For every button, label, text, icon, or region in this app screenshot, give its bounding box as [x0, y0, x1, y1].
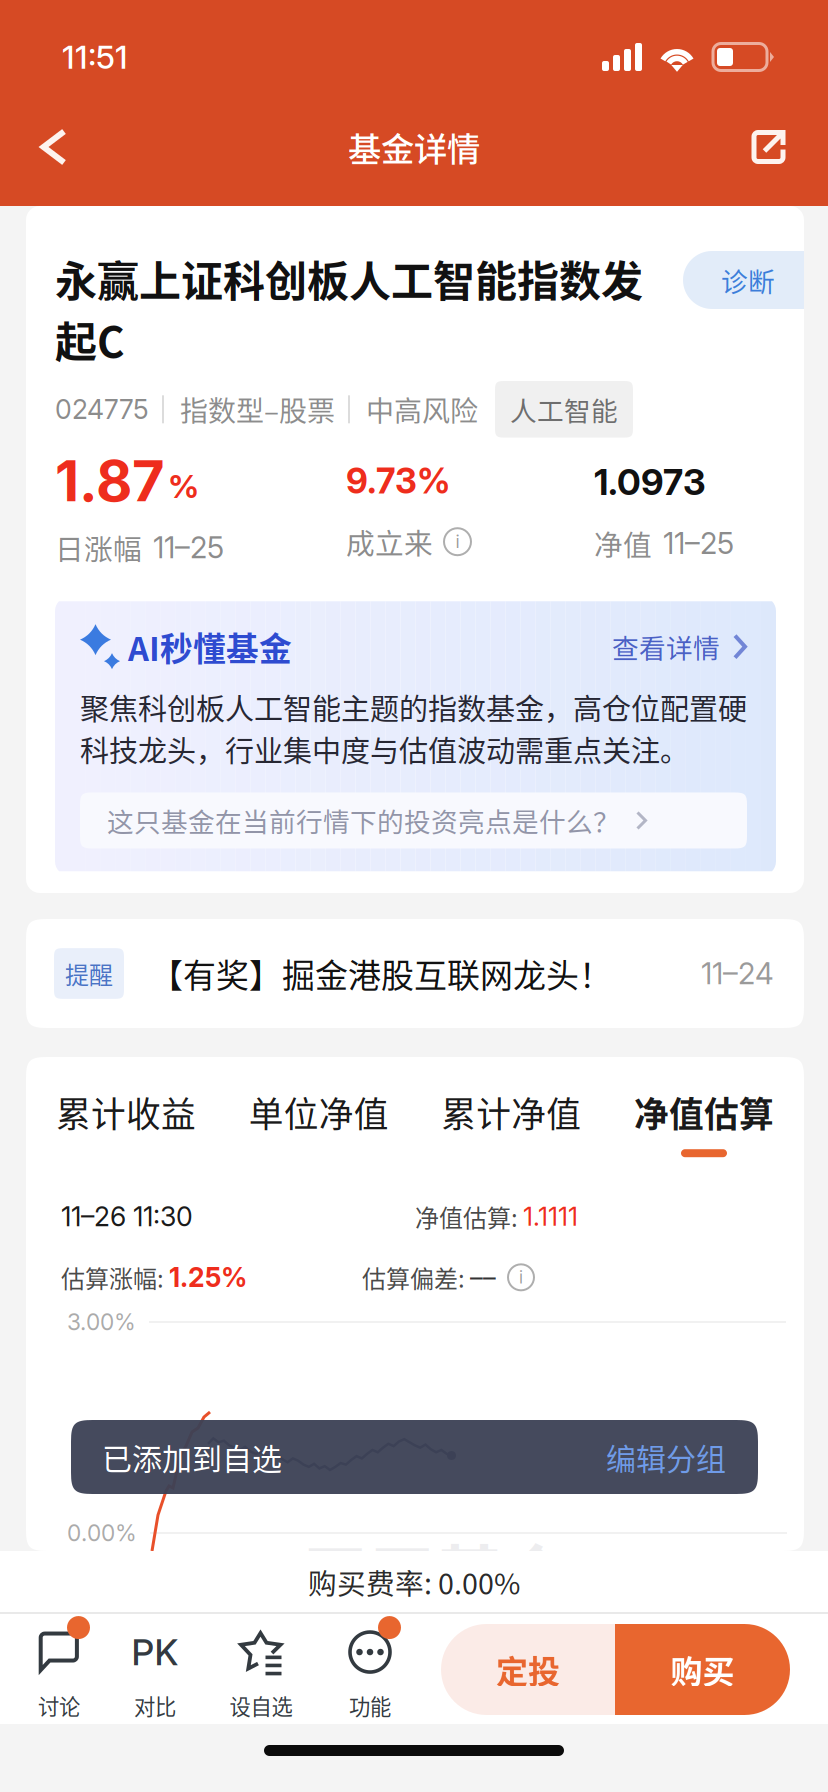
- staticText: 累计净值: [441, 1087, 581, 1137]
- staticText: 11:51: [62, 38, 128, 76]
- staticText: 1.0973: [594, 460, 706, 504]
- staticText: 已添加到自选: [102, 1435, 282, 1479]
- staticText: 查看详情: [612, 627, 720, 666]
- staticText: 日涨幅: [55, 527, 142, 568]
- staticText: 购买费率: 0.00%: [308, 1561, 520, 1603]
- staticText: 11–24: [701, 956, 774, 991]
- staticText: 成立来: [346, 521, 433, 562]
- staticText: 9.73%: [346, 460, 450, 502]
- staticText: ––: [470, 1262, 496, 1293]
- staticText: 净值估算: [634, 1087, 774, 1137]
- staticText: 永赢上证科创板人工智能指数发起C: [55, 248, 643, 370]
- staticText: PK: [131, 1630, 178, 1674]
- staticText: 024775: [55, 393, 149, 425]
- staticText: 净值: [594, 523, 652, 564]
- staticText: 【有奖】掘金港股互联网龙头！: [150, 950, 612, 997]
- staticText: 设自选: [229, 1690, 292, 1721]
- staticText: 对比: [134, 1690, 176, 1721]
- staticText: %: [168, 467, 199, 506]
- staticText: i: [519, 1267, 523, 1287]
- button[interactable]: 讨论: [9, 1613, 109, 1724]
- button[interactable]: 编辑分组: [606, 1435, 726, 1479]
- staticText: 购买: [670, 1646, 734, 1693]
- staticText: 11–26 11:30: [61, 1200, 193, 1233]
- staticText: 编辑分组: [606, 1435, 726, 1479]
- staticText: 11–25: [663, 526, 734, 561]
- staticText: 中高风险: [366, 389, 478, 429]
- button[interactable]: PK: [105, 1613, 205, 1724]
- button[interactable]: 设自选: [211, 1613, 311, 1724]
- staticText: 11–25: [153, 530, 224, 565]
- button[interactable]: 购买: [615, 1624, 790, 1715]
- staticText: 估算涨幅:: [61, 1260, 169, 1295]
- button[interactable]: 返回: [14, 101, 92, 192]
- staticText: 这只基金在当前行情下的投资亮点是什么？: [107, 801, 620, 840]
- staticText: AI秒懂基金: [128, 623, 292, 670]
- staticText: i: [455, 531, 459, 552]
- button[interactable]: 功能: [320, 1613, 420, 1724]
- staticText: 单位净值: [249, 1087, 389, 1137]
- button[interactable]: 累计收益: [56, 1087, 196, 1157]
- button[interactable]: 净值估算: [634, 1087, 774, 1157]
- button[interactable]: 定投: [441, 1624, 615, 1715]
- staticText: 净值估算:: [415, 1199, 523, 1234]
- staticText: 人工智能: [510, 390, 618, 429]
- staticText: 1.87: [55, 447, 165, 515]
- button[interactable]: 累计净值: [441, 1087, 581, 1157]
- button[interactable]: 提醒: [26, 919, 804, 1028]
- staticText: 功能: [349, 1690, 391, 1721]
- button[interactable]: 这只基金在当前行情下的投资亮点是什么？: [80, 792, 747, 848]
- staticText: 定投: [496, 1646, 560, 1693]
- staticText: 基金详情: [348, 123, 480, 171]
- staticText: 1.1111: [523, 1201, 578, 1232]
- button[interactable]: 分享: [727, 101, 810, 192]
- staticText: 估算偏差:: [362, 1260, 470, 1295]
- staticText: 3.00%: [67, 1308, 136, 1336]
- button[interactable]: 查看详情: [612, 627, 747, 666]
- button[interactable]: 诊断: [683, 251, 828, 309]
- staticText: 诊断: [721, 261, 775, 299]
- staticText: 提醒: [65, 956, 113, 991]
- button[interactable]: 单位净值: [249, 1087, 389, 1157]
- staticText: 指数型–股票: [180, 389, 335, 429]
- staticText: 0.00%: [67, 1519, 137, 1547]
- staticText: 累计收益: [56, 1087, 196, 1137]
- staticText: 聚焦科创板人工智能主题的指数基金，高仓位配置硬科技龙头，行业集中度与估值波动需重…: [80, 686, 747, 770]
- staticText: 天天基金: [302, 1524, 570, 1620]
- staticText: 讨论: [38, 1690, 80, 1721]
- staticText: 1.25%: [169, 1261, 247, 1293]
